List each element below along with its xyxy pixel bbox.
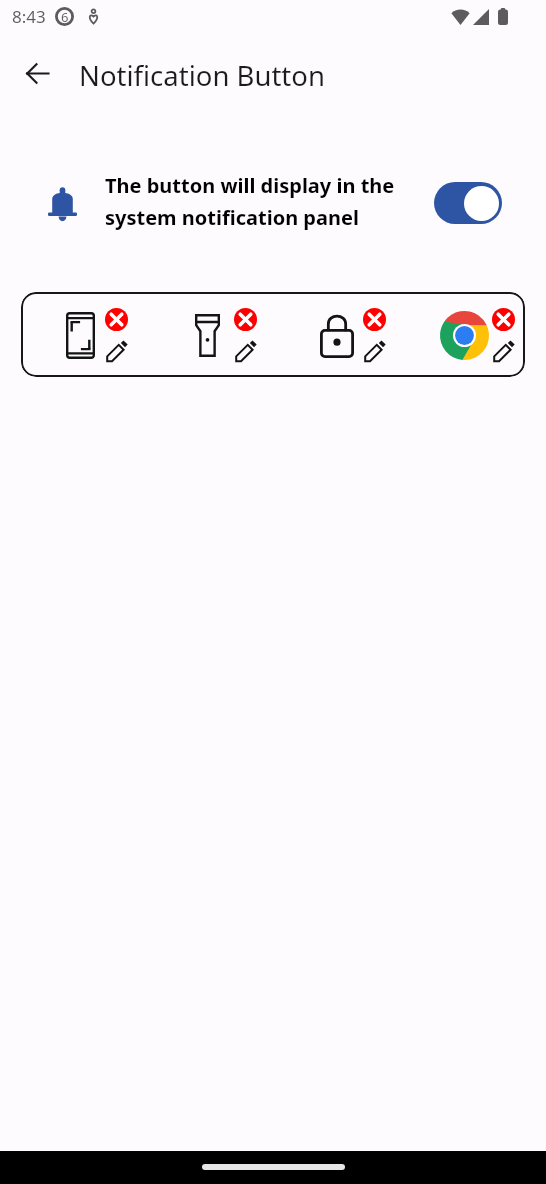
button[interactable]: Chrome shortcut (434, 305, 495, 365)
button[interactable]: Flashlight shortcut (189, 305, 226, 365)
button[interactable]: Remove shortcut (361, 306, 388, 333)
button[interactable]: Edit shortcut (233, 338, 259, 364)
staticText: Notification Button (79, 57, 325, 94)
button[interactable]: Remove shortcut (232, 306, 259, 333)
button[interactable]: Edit shortcut (362, 338, 388, 364)
button[interactable]: Show the button in the system notificati… (434, 182, 502, 224)
button[interactable]: Edit shortcut (104, 338, 130, 364)
staticText: 6 (61, 8, 69, 26)
button[interactable]: Remove shortcut (103, 306, 130, 333)
button[interactable]: The button will display in the system no… (0, 160, 546, 246)
button[interactable]: Back (13, 49, 61, 97)
button[interactable]: Screenshot shortcut (60, 305, 101, 365)
button[interactable]: Remove shortcut (490, 306, 517, 333)
staticText: The button will display in the system no… (105, 172, 405, 231)
button[interactable]: Lock screen shortcut (314, 305, 360, 365)
button[interactable]: Edit shortcut (491, 338, 517, 364)
staticText: 8:43 (12, 5, 46, 28)
